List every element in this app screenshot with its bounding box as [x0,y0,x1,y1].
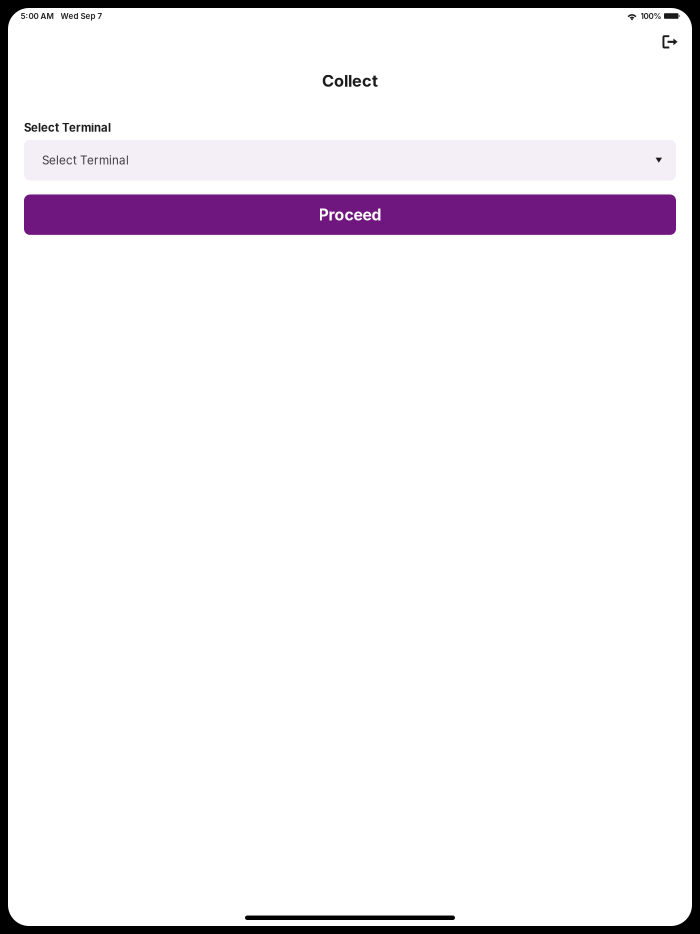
button[interactable]: Select Terminal [24,140,676,180]
staticText: Collect [322,71,378,91]
button[interactable]: Log out [653,27,687,57]
staticText: Wed Sep 7 [60,11,102,21]
button[interactable]: Proceed [24,194,676,235]
staticText: Select Terminal [24,121,111,134]
staticText: Proceed [318,205,381,224]
staticText: Select Terminal [42,153,129,167]
staticText: 100% [640,11,661,21]
staticText: 5:00 AM [20,11,53,21]
